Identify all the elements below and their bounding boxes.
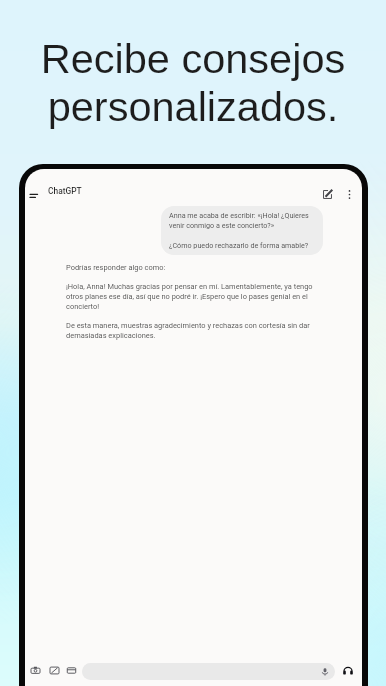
button[interactable]: Voice mode — [339, 662, 356, 679]
staticText: ¡Hola, Anna! Muchas gracias por pensar e… — [66, 282, 318, 311]
button[interactable]: Photos — [46, 662, 63, 679]
staticText: De esta manera, muestras agradecimiento … — [66, 321, 318, 340]
button[interactable]: Open menu — [28, 188, 42, 202]
button[interactable]: More options — [342, 187, 356, 201]
button[interactable]: Camera — [27, 662, 44, 679]
staticText: ChatGPT — [48, 186, 82, 196]
staticText: Podrías responder algo como: — [66, 263, 166, 272]
staticText: Recibe consejos personalizados. — [0, 35, 386, 130]
button[interactable]: Files — [63, 662, 80, 679]
button[interactable] — [82, 663, 335, 680]
button[interactable]: New chat — [320, 187, 334, 201]
staticText: Anna me acaba de escribir: «¡Hola! ¿Quie… — [169, 211, 315, 250]
